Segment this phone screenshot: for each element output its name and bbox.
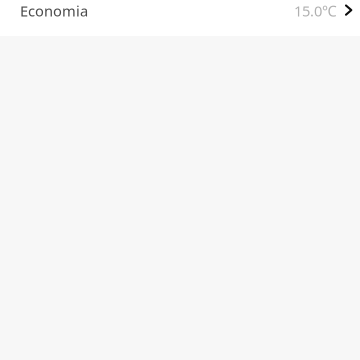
button[interactable]: Economia	[0, 0, 360, 36]
staticText: 15.0℃	[294, 1, 337, 20]
staticText: Economia	[20, 1, 88, 20]
